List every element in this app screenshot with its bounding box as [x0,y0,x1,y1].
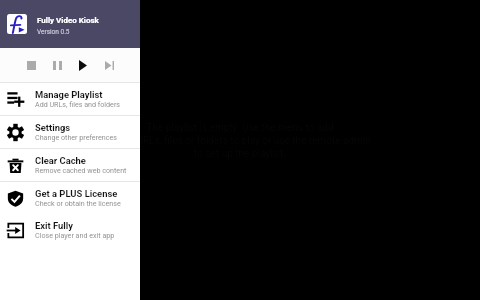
button[interactable]: Manage Playlist [0,82,140,115]
staticText: Manage Playlist [35,89,103,100]
staticText: Remove cached web content [35,166,127,174]
staticText: Check or obtain the license [35,199,121,207]
staticText: The playlist is empty. Use the menu to a… [109,122,371,160]
button[interactable]: Get a PLUS License [0,181,140,214]
button[interactable]: Clear Cache [0,148,140,181]
staticText: Change other preferences [35,133,117,141]
staticText: Clear Cache [35,155,86,166]
button[interactable]: Pause [44,52,70,78]
staticText: Exit Fully [35,220,74,231]
staticText: Close player and exit app [35,231,115,239]
button[interactable]: Stop [18,52,44,78]
staticText: Get a PLUS License [35,188,118,199]
button[interactable]: Play [70,52,96,78]
staticText: Fully Video Kiosk [37,16,99,25]
staticText: Add URLs, files and folders [35,100,120,108]
button[interactable]: Settings [0,115,140,148]
button[interactable]: Exit Fully [0,214,140,246]
staticText: Settings [35,122,71,133]
button[interactable]: Next [96,52,122,78]
staticText: Version 0.5 [37,28,70,36]
